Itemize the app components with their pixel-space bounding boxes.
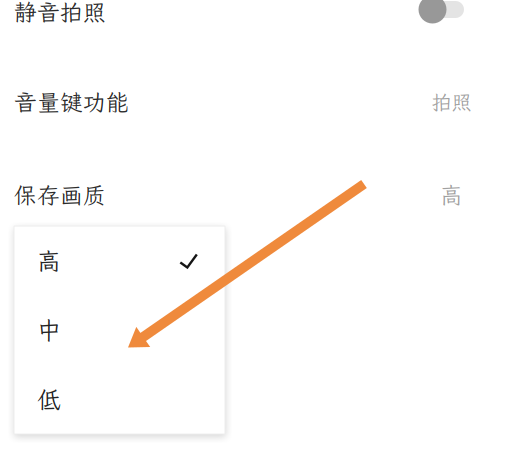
staticText: 拍照 xyxy=(431,89,471,115)
button[interactable]: 音量键功能 xyxy=(0,79,516,125)
staticText: 低 xyxy=(37,383,61,415)
staticText: 音量键功能 xyxy=(14,87,129,117)
staticText: 静音拍照 xyxy=(14,0,106,27)
button[interactable]: 静音拍照 xyxy=(0,0,516,35)
button[interactable]: 静音拍照，关闭 xyxy=(419,0,464,23)
staticText: 中 xyxy=(37,314,61,346)
button[interactable]: 中 xyxy=(14,295,225,365)
staticText: 高 xyxy=(440,180,463,210)
button[interactable]: 低 xyxy=(14,365,225,434)
button[interactable]: 保存画质 xyxy=(0,172,516,218)
staticText: 高 xyxy=(37,245,61,276)
button[interactable]: 高 xyxy=(14,226,225,295)
staticText: 保存画质 xyxy=(14,180,106,210)
